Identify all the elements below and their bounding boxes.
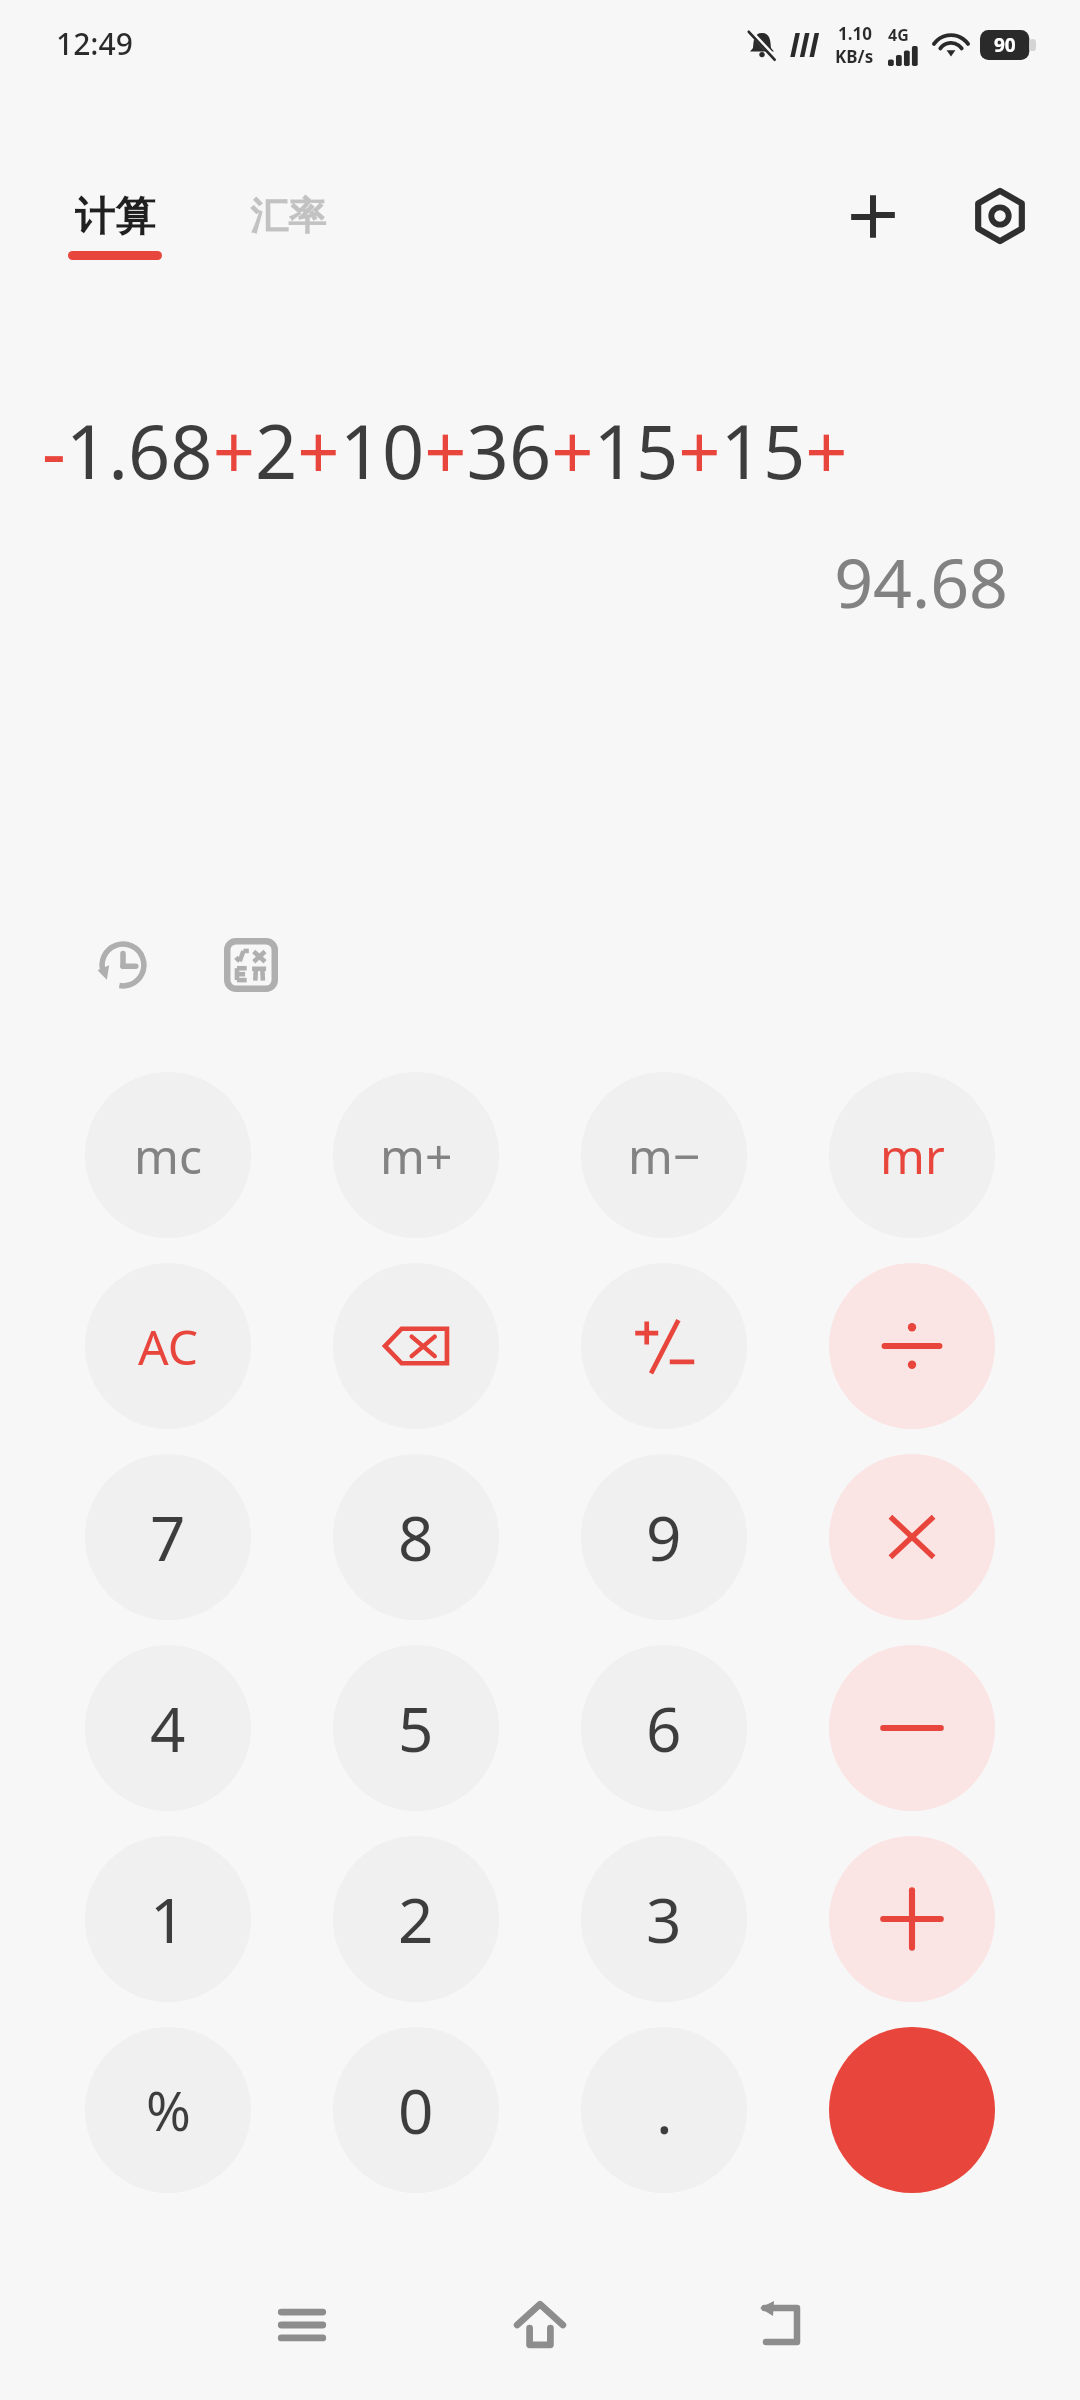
button[interactable]: 汇率 bbox=[250, 192, 326, 240]
staticText: KB/s bbox=[835, 45, 874, 68]
staticText: 汇率 bbox=[250, 192, 326, 240]
button[interactable]: 9 bbox=[581, 1454, 747, 1620]
button[interactable]: 计算 bbox=[68, 191, 162, 260]
button[interactable]: Scientific bbox=[214, 928, 288, 1002]
staticText: m+ bbox=[380, 1123, 453, 1188]
staticText: % bbox=[146, 2073, 191, 2147]
staticText: 90 bbox=[994, 32, 1016, 58]
button[interactable]: mr bbox=[829, 1072, 995, 1238]
staticText: 2 bbox=[398, 1877, 434, 1961]
button[interactable]: Recents bbox=[252, 2275, 352, 2375]
button[interactable]: mc bbox=[85, 1072, 251, 1238]
staticText: 计算 bbox=[75, 191, 155, 241]
staticText: 4G bbox=[888, 24, 909, 46]
staticText: 1.10 bbox=[838, 22, 872, 45]
staticText: . bbox=[656, 2068, 673, 2152]
button[interactable]: Minus bbox=[829, 1645, 995, 1811]
button[interactable]: 0 bbox=[333, 2027, 499, 2193]
button[interactable]: % bbox=[85, 2027, 251, 2193]
button[interactable]: Backspace bbox=[333, 1263, 499, 1429]
staticText: 8 bbox=[398, 1495, 434, 1579]
button[interactable]: Plus minus bbox=[581, 1263, 747, 1429]
button[interactable]: Home bbox=[490, 2275, 590, 2375]
staticText: 94.68 bbox=[42, 535, 1008, 628]
staticText: 9 bbox=[646, 1495, 682, 1579]
button[interactable]: Divide bbox=[829, 1263, 995, 1429]
button[interactable]: Equals bbox=[829, 2027, 995, 2193]
staticText: 5 bbox=[398, 1686, 434, 1770]
button[interactable]: 6 bbox=[581, 1645, 747, 1811]
button[interactable]: Settings bbox=[960, 176, 1040, 256]
button[interactable]: 3 bbox=[581, 1836, 747, 2002]
button[interactable]: Multiply bbox=[829, 1454, 995, 1620]
button[interactable]: 8 bbox=[333, 1454, 499, 1620]
staticText: 7 bbox=[150, 1495, 186, 1579]
button[interactable]: m+ bbox=[333, 1072, 499, 1238]
staticText: 1 bbox=[150, 1877, 186, 1961]
staticText: AC bbox=[138, 1314, 199, 1379]
button[interactable]: 4 bbox=[85, 1645, 251, 1811]
staticText: mr bbox=[880, 1123, 945, 1188]
staticText: m− bbox=[628, 1123, 701, 1188]
staticText: 6 bbox=[646, 1686, 682, 1770]
button[interactable]: m− bbox=[581, 1072, 747, 1238]
staticText: 4 bbox=[150, 1686, 186, 1770]
staticText: 12:49 bbox=[56, 23, 133, 64]
button[interactable]: History bbox=[86, 928, 160, 1002]
button[interactable]: Unit conversion bbox=[834, 177, 912, 255]
staticText: mc bbox=[134, 1123, 202, 1188]
button[interactable]: AC bbox=[85, 1263, 251, 1429]
button[interactable]: 2 bbox=[333, 1836, 499, 2002]
staticText: 3 bbox=[646, 1877, 682, 1961]
button[interactable]: 7 bbox=[85, 1454, 251, 1620]
button[interactable]: 1 bbox=[85, 1836, 251, 2002]
staticText: -1.68+2+10+36+15+15+ bbox=[42, 400, 1038, 501]
button[interactable]: . bbox=[581, 2027, 747, 2193]
button[interactable]: 5 bbox=[333, 1645, 499, 1811]
button[interactable]: Back bbox=[732, 2275, 832, 2375]
staticText: 0 bbox=[398, 2068, 434, 2152]
button[interactable]: Plus bbox=[829, 1836, 995, 2002]
